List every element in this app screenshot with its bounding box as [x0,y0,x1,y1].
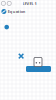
button[interactable]: Settings [7,1,12,6]
staticText: LEVEL 1 [22,1,36,6]
staticText: Equation [8,9,26,14]
button[interactable]: Back [1,1,6,6]
